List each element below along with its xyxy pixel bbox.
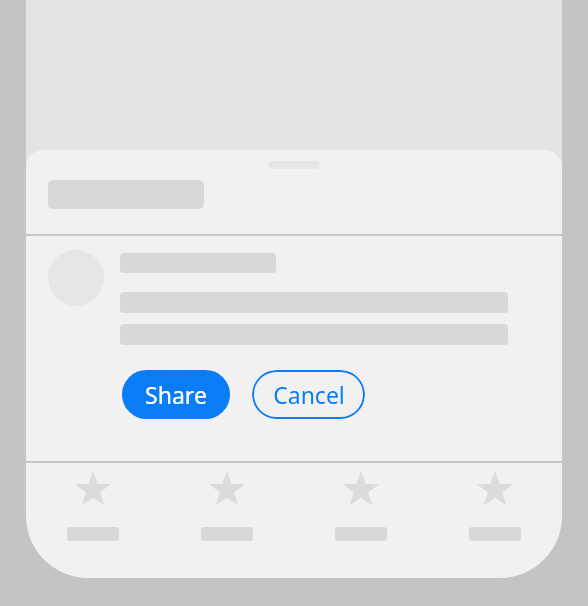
- button[interactable]: Nav item 2: [160, 463, 294, 578]
- button[interactable]: Nav item 1: [26, 463, 160, 578]
- button[interactable]: Share: [122, 370, 230, 419]
- button[interactable]: Nav item 4: [428, 463, 562, 578]
- staticText: Cancel: [273, 379, 345, 410]
- staticText: Share: [145, 379, 207, 410]
- button[interactable]: Nav item 3: [294, 463, 428, 578]
- button[interactable]: Cancel: [252, 370, 365, 419]
